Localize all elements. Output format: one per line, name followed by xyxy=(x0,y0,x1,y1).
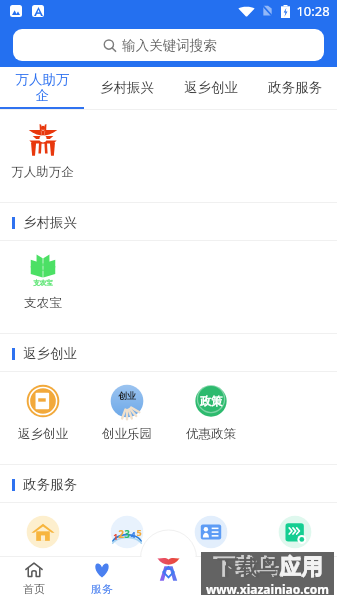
other: 创业乐园 xyxy=(110,384,144,418)
other xyxy=(26,515,60,549)
staticText: 1 xyxy=(113,531,118,542)
staticText: 支农宝 xyxy=(24,295,62,311)
other: 返乡创业 xyxy=(26,384,60,418)
staticText: 乡村振兴 xyxy=(23,214,77,231)
staticText: 2 xyxy=(118,527,124,541)
staticText: 下载鸟 xyxy=(213,553,279,581)
button[interactable]: 我的 xyxy=(270,556,337,600)
staticText: 服务 xyxy=(91,582,113,596)
other: 支农宝 xyxy=(26,253,60,287)
button[interactable] xyxy=(169,515,253,574)
button[interactable]: 1 xyxy=(85,515,169,574)
other xyxy=(110,515,144,549)
staticText: 消息 xyxy=(226,582,248,596)
staticText: 应用 xyxy=(279,553,323,581)
other: 优惠政策 xyxy=(194,384,228,418)
staticText: 输入关键词搜索 xyxy=(122,37,217,54)
staticText: 我的 xyxy=(293,582,315,596)
staticText: 下载鸟 xyxy=(217,555,280,581)
button[interactable]: 创业乐园 xyxy=(85,384,169,442)
staticText: 万人助万企 xyxy=(12,71,73,104)
staticText: 应用 xyxy=(280,555,322,581)
staticText: 政务服务 xyxy=(268,79,322,96)
staticText: 首页 xyxy=(23,582,45,596)
button[interactable]: 支农宝 xyxy=(0,253,85,311)
button[interactable]: 万人助万企 xyxy=(0,67,85,109)
staticText: 返乡创业 xyxy=(23,345,77,362)
staticText: 乡村振兴 xyxy=(100,79,154,96)
staticText: 政策 xyxy=(200,394,222,408)
button[interactable]: 服务 xyxy=(68,556,136,600)
button[interactable]: 消息 xyxy=(203,556,270,600)
staticText: 优惠政策 xyxy=(186,426,236,442)
other: 万人助万企 xyxy=(26,122,60,156)
staticText: 创业 xyxy=(118,390,136,401)
staticText: 创业乐园 xyxy=(102,426,152,442)
button[interactable]: 返乡创业 xyxy=(0,384,85,442)
button[interactable]: 返乡创业 xyxy=(169,67,253,109)
button[interactable] xyxy=(0,515,85,574)
staticText: 10:28 xyxy=(296,2,330,20)
staticText: 返乡创业 xyxy=(184,79,238,96)
other xyxy=(278,515,312,549)
button[interactable] xyxy=(253,515,337,574)
staticText: 4 xyxy=(130,528,136,540)
staticText: www.xiazainiao.com xyxy=(206,581,329,595)
staticText: 5 xyxy=(136,526,142,538)
button[interactable]: 输入关键词搜索 xyxy=(13,29,324,61)
other xyxy=(194,515,228,549)
button[interactable]: 万人助万企 xyxy=(0,122,85,180)
staticText: 万人助万企 xyxy=(11,164,74,180)
button[interactable]: 政务服务 xyxy=(253,67,337,109)
button[interactable]: 首页 xyxy=(0,556,68,600)
button[interactable]: 优惠政策 xyxy=(169,384,253,442)
button[interactable]: Center action xyxy=(154,556,183,585)
staticText: 3 xyxy=(124,527,130,541)
staticText: 支农宝 xyxy=(33,279,53,287)
button[interactable]: 乡村振兴 xyxy=(85,67,169,109)
staticText: 政务服务 xyxy=(23,476,77,493)
staticText: 返乡创业 xyxy=(18,426,68,442)
